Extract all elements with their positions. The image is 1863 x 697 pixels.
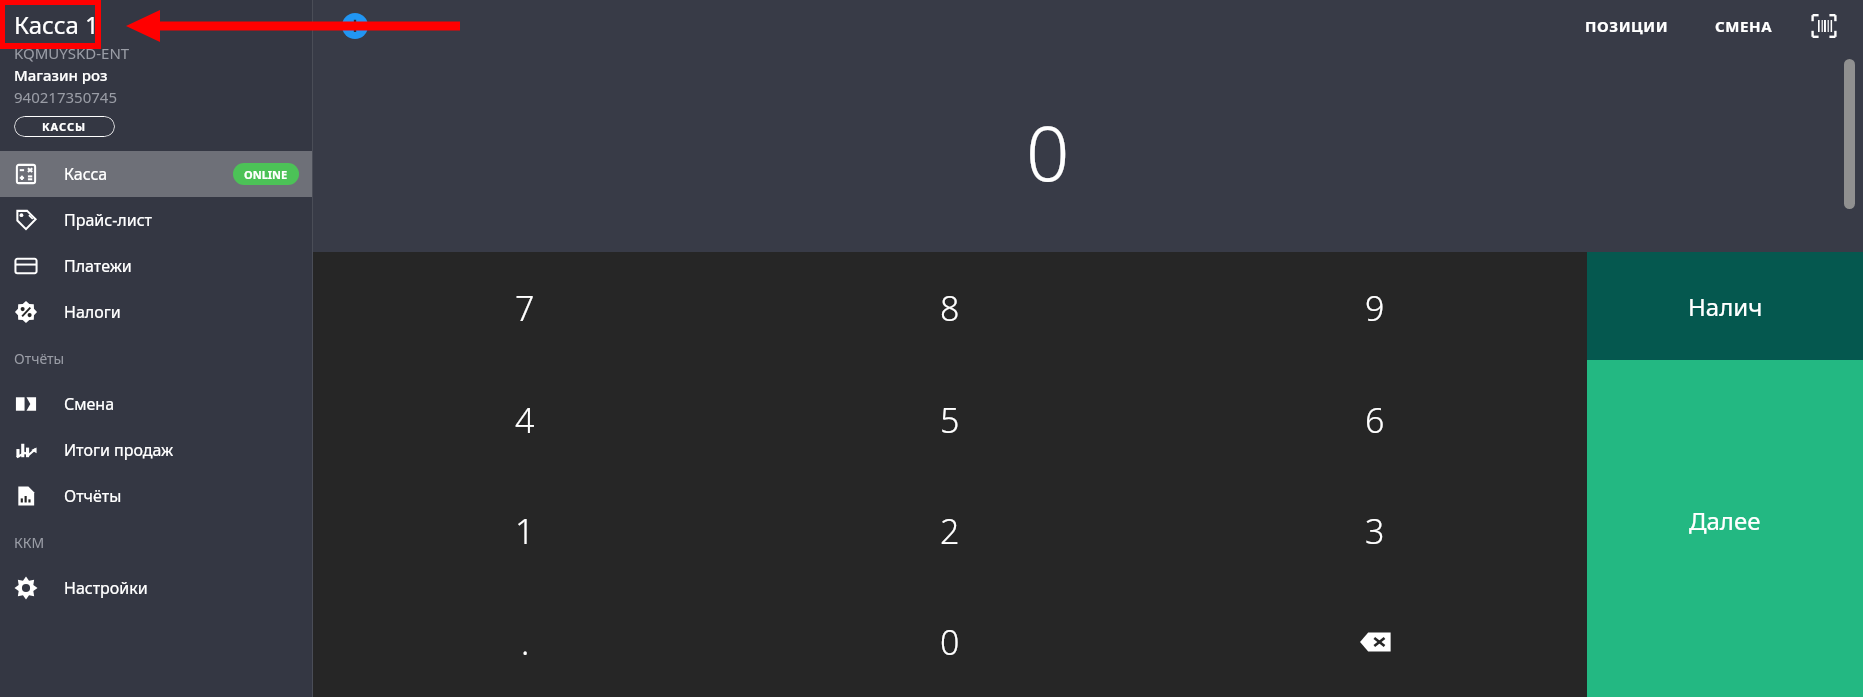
staticText: 3: [1365, 508, 1385, 554]
staticText: 0: [940, 619, 960, 665]
staticText: 4: [515, 397, 535, 443]
staticText: ONLINE: [244, 167, 288, 182]
staticText: Прайс-лист: [64, 209, 152, 231]
button[interactable]: Налоги: [0, 289, 313, 335]
button[interactable]: КАССЫ: [14, 116, 115, 137]
button[interactable]: Касса: [0, 151, 313, 197]
button[interactable]: Платежи: [0, 243, 313, 289]
staticText: 9: [1365, 285, 1385, 331]
staticText: Отчёты: [64, 485, 122, 507]
staticText: Настройки: [64, 577, 148, 599]
button[interactable]: Смена: [0, 381, 313, 427]
staticText: ККМ: [14, 533, 45, 552]
staticText: KQMUYSKD-ENT: [14, 43, 130, 63]
staticText: Итоги продаж: [64, 439, 174, 461]
staticText: .: [521, 619, 530, 665]
staticText: 5: [940, 397, 960, 443]
staticText: 1: [515, 508, 535, 554]
staticText: Налоги: [64, 301, 121, 323]
staticText: Касса: [64, 163, 108, 185]
button[interactable]: Настройки: [0, 565, 313, 611]
staticText: Магазин роз: [14, 65, 108, 85]
staticText: 8: [940, 285, 960, 331]
button[interactable]: 2: [737, 475, 1162, 586]
button[interactable]: СМЕНА: [1705, 8, 1783, 44]
button[interactable]: Отчёты: [0, 473, 313, 519]
button[interactable]: Далее: [1587, 360, 1863, 697]
staticText: Далее: [1689, 504, 1761, 537]
staticText: 0: [1026, 100, 1070, 204]
staticText: 2: [940, 508, 960, 554]
button[interactable]: 7: [313, 252, 737, 364]
staticText: Налич: [1688, 290, 1763, 323]
button[interactable]: Info: [342, 13, 368, 39]
button[interactable]: 0: [737, 586, 1162, 697]
staticText: Касса 1: [14, 8, 99, 41]
button[interactable]: 9: [1162, 252, 1587, 364]
button[interactable]: 8: [737, 252, 1162, 364]
button[interactable]: ПОЗИЦИИ: [1575, 8, 1679, 44]
staticText: Платежи: [64, 255, 132, 277]
staticText: 7: [515, 285, 535, 331]
button[interactable]: Backspace: [1162, 586, 1587, 697]
button[interactable]: Scan barcode: [1807, 9, 1841, 43]
button[interactable]: Итоги продаж: [0, 427, 313, 473]
button[interactable]: 6: [1162, 364, 1587, 475]
staticText: ПОЗИЦИИ: [1585, 16, 1669, 36]
button[interactable]: 5: [737, 364, 1162, 475]
staticText: 940217350745: [14, 87, 117, 107]
button[interactable]: 3: [1162, 475, 1587, 586]
button[interactable]: 4: [313, 364, 737, 475]
staticText: Отчёты: [14, 349, 65, 368]
button[interactable]: Прайс-лист: [0, 197, 313, 243]
staticText: 6: [1365, 397, 1385, 443]
staticText: Смена: [64, 393, 115, 415]
button[interactable]: Налич: [1587, 252, 1863, 360]
staticText: КАССЫ: [42, 119, 87, 134]
staticText: СМЕНА: [1715, 16, 1773, 36]
button[interactable]: 1: [313, 475, 737, 586]
